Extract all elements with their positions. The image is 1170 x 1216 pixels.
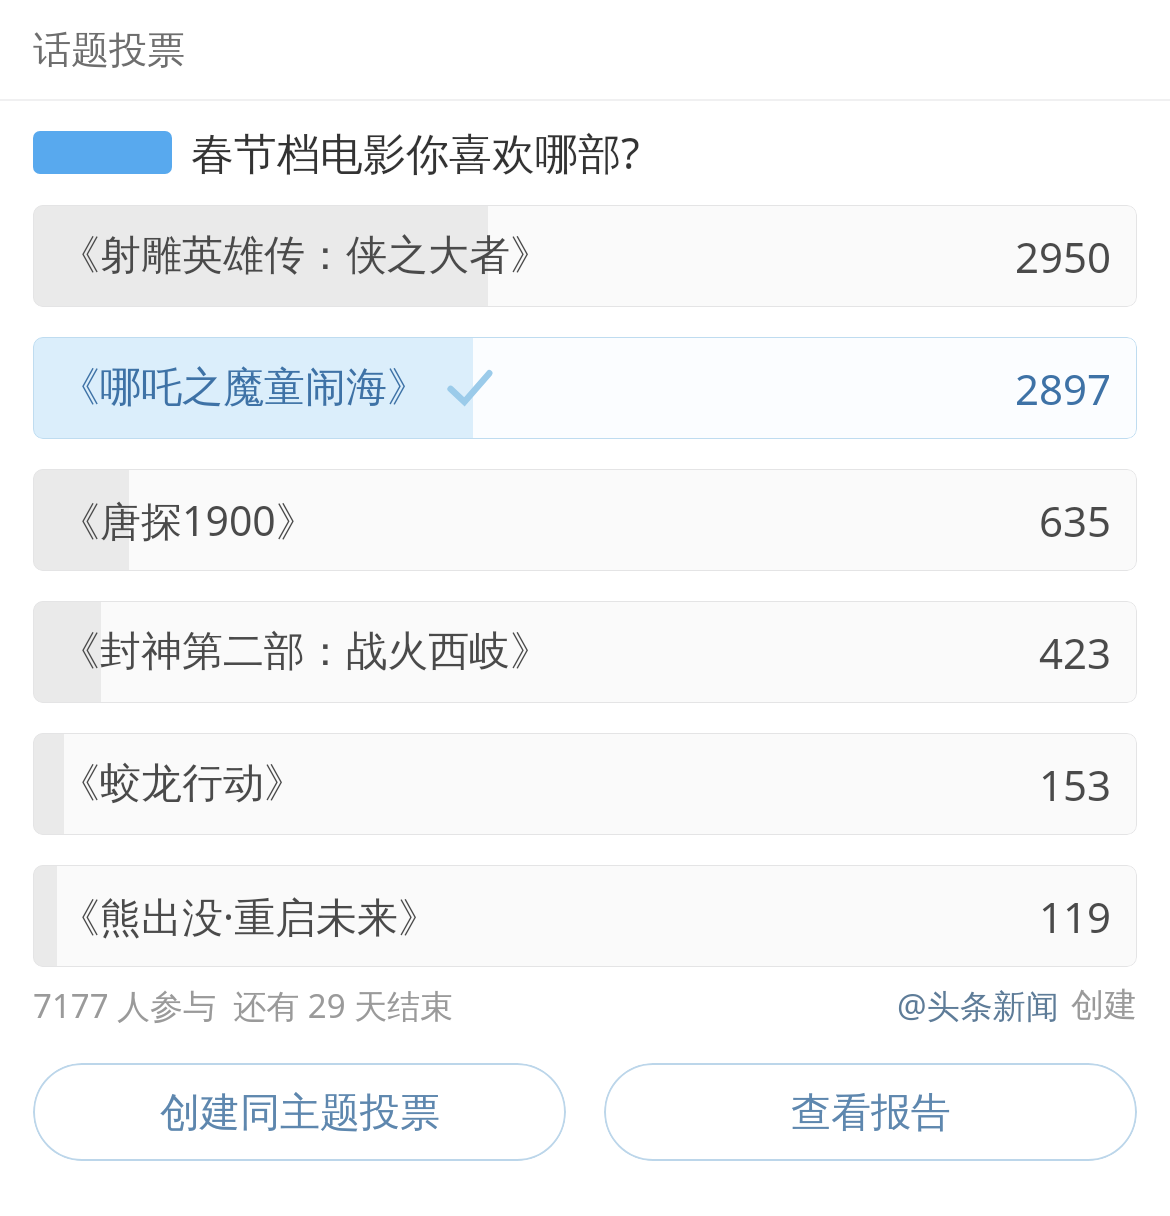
button[interactable]: 创建同主题投票 [33,1063,566,1161]
button[interactable]: 《哪吒之魔童闹海》 [33,337,1137,439]
button[interactable]: 《唐探1900》 [33,469,1137,571]
staticText: 423 [1038,624,1111,681]
staticText: 153 [1038,756,1111,813]
button[interactable]: 《熊出没·重启未来》 [33,865,1137,967]
staticText: 《射雕英雄传：侠之大者》 [59,230,551,282]
staticText: 创建同主题投票 [160,1087,440,1137]
staticText: 7177 人参与 还有 29 天结束 [33,983,454,1028]
button[interactable]: 《射雕英雄传：侠之大者》 [33,205,1137,307]
staticText: 635 [1038,492,1111,549]
button[interactable]: 《蛟龙行动》 [33,733,1137,835]
staticText: 2950 [1014,228,1111,285]
button[interactable]: 《封神第二部：战火西岐》 [33,601,1137,703]
staticText: 《哪吒之魔童闹海》 [59,362,428,414]
staticText: 《封神第二部：战火西岐》 [59,626,551,678]
staticText: 《熊出没·重启未来》 [59,888,439,944]
button[interactable]: 查看报告 [604,1063,1137,1161]
staticText: 查看报告 [791,1087,951,1137]
staticText: 《唐探1900》 [59,492,317,548]
staticText: 119 [1038,888,1111,945]
staticText: 《蛟龙行动》 [59,758,305,810]
button[interactable]: @头条新闻 [897,983,1059,1028]
staticText: 2897 [1014,360,1111,417]
staticText: 春节档电影你喜欢哪部? [191,123,640,182]
staticText: 创建 [1071,984,1137,1026]
staticText: 话题投票 [33,26,185,74]
